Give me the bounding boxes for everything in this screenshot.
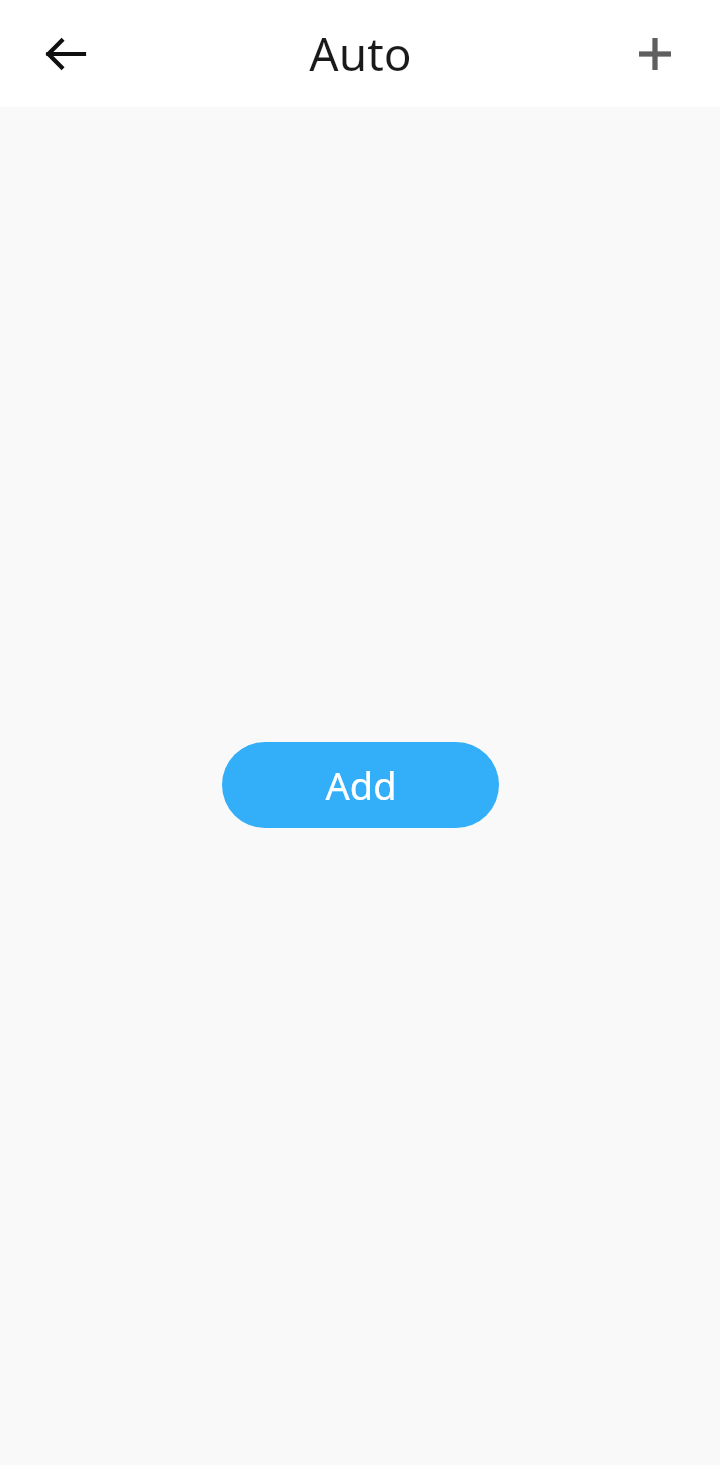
button[interactable]: Add (607, 6, 703, 102)
staticText: Add (325, 759, 397, 811)
button[interactable]: Add (222, 742, 499, 828)
staticText: Auto (309, 22, 412, 85)
button[interactable]: Back (18, 6, 114, 102)
